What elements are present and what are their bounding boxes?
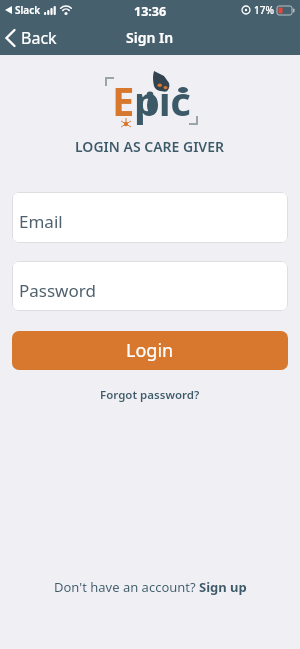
- staticText: Email: [19, 210, 63, 233]
- button[interactable]: Back: [5, 26, 57, 49]
- button[interactable]: Login: [12, 331, 288, 370]
- staticText: Don't have an account? Sign up: [54, 578, 247, 596]
- staticText: LOGIN AS CARE GIVER: [75, 137, 225, 156]
- staticText: Login: [126, 338, 174, 363]
- button[interactable]: Email: [12, 192, 288, 243]
- staticText: 17%: [254, 3, 274, 17]
- button[interactable]: Don't have an account? Sign up: [50, 574, 251, 600]
- staticText: Sign In: [126, 28, 174, 47]
- staticText: Forgot password?: [100, 387, 200, 403]
- staticText: Epic: [112, 73, 191, 127]
- staticText: Slack: [15, 3, 41, 17]
- staticText: Password: [19, 279, 96, 302]
- button[interactable]: Forgot password?: [96, 383, 204, 407]
- button[interactable]: Password: [12, 261, 288, 311]
- staticText: Back: [21, 27, 57, 49]
- staticText: 13:36: [134, 3, 167, 20]
